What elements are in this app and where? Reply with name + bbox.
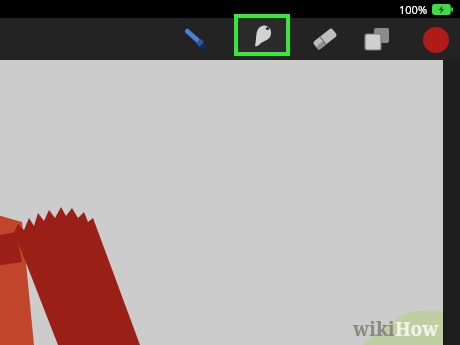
button[interactable]: Brush: [174, 21, 218, 57]
button[interactable]: Layers: [354, 21, 398, 57]
button[interactable]: Color: [418, 22, 454, 58]
button[interactable]: Eraser: [302, 21, 348, 57]
staticText: wiki: [353, 316, 395, 342]
staticText: 100%: [399, 2, 428, 17]
button[interactable]: Smudge tool: [238, 18, 286, 52]
staticText: How: [395, 316, 439, 342]
